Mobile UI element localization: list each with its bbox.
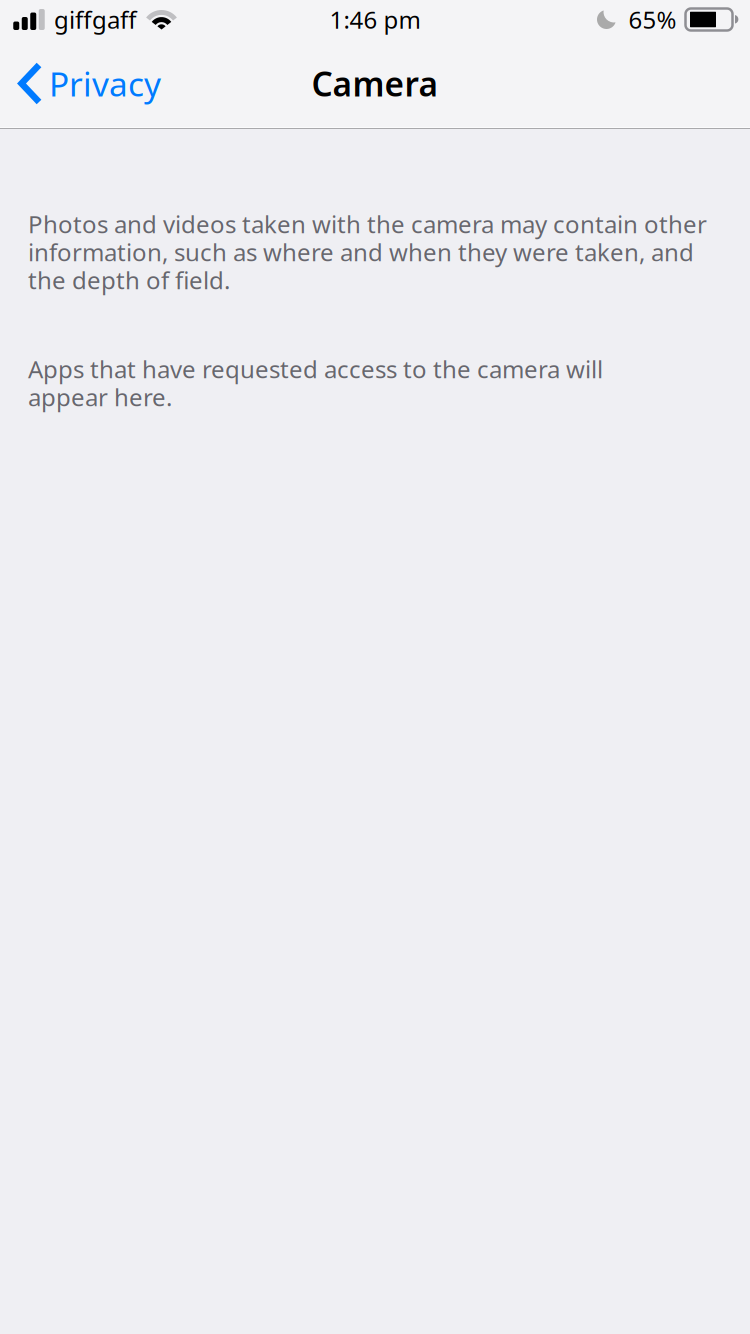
- staticText: Apps that have requested access to the c…: [28, 353, 603, 385]
- staticText: Photos and videos taken with the camera …: [28, 208, 707, 240]
- staticText: giffgaff: [54, 3, 137, 36]
- button[interactable]: Privacy: [0, 55, 175, 111]
- staticText: information, such as where and when they…: [28, 236, 694, 268]
- staticText: Camera: [311, 61, 438, 106]
- staticText: Privacy: [49, 61, 161, 106]
- staticText: 65%: [628, 3, 676, 36]
- staticText: appear here.: [28, 381, 172, 413]
- staticText: 1:46 pm: [329, 3, 420, 36]
- staticText: the depth of field.: [28, 264, 230, 296]
